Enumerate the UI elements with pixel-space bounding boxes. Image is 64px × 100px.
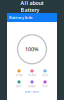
button[interactable]: Health (25, 68, 38, 79)
staticText: Volt (42, 74, 48, 77)
staticText: Level (16, 85, 22, 88)
staticText: Temp (15, 74, 22, 77)
button[interactable]: Learn more (24, 90, 39, 93)
button[interactable]: Volt (38, 68, 51, 79)
button[interactable]: Tech (38, 79, 51, 90)
staticText: Health (27, 74, 36, 77)
staticText: Learn more (24, 90, 39, 93)
staticText: All about Battery (20, 0, 43, 14)
button[interactable]: Temp (12, 68, 25, 79)
button[interactable]: Usage (25, 79, 38, 90)
staticText: Battery Info (9, 15, 32, 20)
staticText: 100% (25, 46, 39, 53)
button[interactable]: Level (12, 79, 25, 90)
staticText: Usage (28, 85, 36, 88)
staticText: Tech (42, 85, 48, 88)
